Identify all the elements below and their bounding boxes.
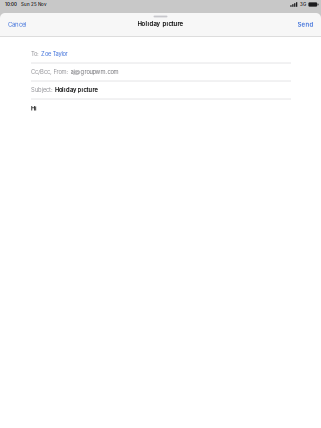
staticText: Holiday picture	[137, 20, 183, 27]
staticText: Holiday	[55, 86, 76, 93]
staticText: To:	[31, 50, 39, 57]
button[interactable]: Subject:	[31, 81, 291, 99]
staticText: picture	[78, 86, 98, 93]
staticText: Cancel	[8, 21, 26, 28]
staticText: 3G	[300, 2, 306, 7]
staticText: Sun 25 Nov	[21, 2, 47, 7]
button[interactable]: Cc/Bcc,	[31, 63, 291, 81]
staticText: Send	[297, 21, 313, 28]
button[interactable]: To:	[31, 45, 291, 63]
staticText: Hi	[31, 105, 37, 112]
staticText: Taylor	[53, 50, 68, 57]
staticText: Zoe	[41, 50, 51, 57]
staticText: Subject:	[31, 86, 53, 93]
button[interactable]: Send	[289, 16, 321, 33]
staticText: Cc/Bcc,	[31, 68, 52, 75]
staticText: From:	[53, 68, 68, 75]
staticText: aj@groupwm.com	[70, 68, 118, 75]
staticText: 10:00	[5, 2, 17, 7]
button[interactable]: Cancel	[0, 16, 34, 33]
